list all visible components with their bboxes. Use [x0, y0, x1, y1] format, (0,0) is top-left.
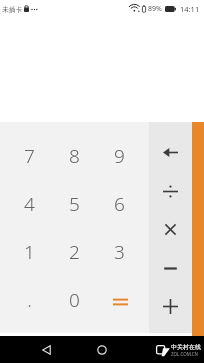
button[interactable]: 0 — [52, 276, 97, 324]
button[interactable]: 1 — [6, 228, 52, 276]
staticText: 中关村在线 — [171, 343, 201, 351]
button[interactable]: Divide — [149, 172, 192, 211]
button[interactable]: Equals — [97, 276, 142, 324]
staticText: 0 — [69, 287, 80, 313]
staticText: ZOL.COM.CN — [171, 351, 198, 357]
button[interactable]: Subtract — [149, 249, 192, 288]
staticText: 6 — [114, 191, 125, 217]
button[interactable]: Home — [90, 338, 114, 362]
staticText: 14:11 — [180, 4, 200, 14]
staticText: 2 — [69, 239, 80, 265]
button[interactable]: 9 — [97, 132, 142, 180]
button[interactable]: 3 — [97, 228, 142, 276]
staticText: 3 — [114, 239, 125, 265]
button[interactable]: . — [6, 276, 52, 324]
staticText: . — [27, 287, 32, 313]
button[interactable]: 5 — [52, 180, 97, 228]
button[interactable]: 2 — [52, 228, 97, 276]
button[interactable]: Backspace — [149, 133, 192, 172]
button[interactable]: Multiply — [149, 210, 192, 249]
button[interactable]: Add — [149, 287, 192, 326]
button[interactable]: 4 — [6, 180, 52, 228]
staticText: 8 — [69, 143, 80, 169]
button[interactable]: 7 — [6, 132, 52, 180]
staticText: 7 — [24, 143, 35, 169]
staticText: 9 — [114, 143, 125, 169]
staticText: 89% — [148, 4, 162, 14]
button[interactable]: Back — [34, 338, 58, 362]
staticText: 4 — [24, 191, 35, 217]
staticText: 5 — [69, 191, 80, 217]
button[interactable]: 6 — [97, 180, 142, 228]
staticText: 1 — [24, 239, 35, 265]
button[interactable]: 8 — [52, 132, 97, 180]
staticText: 未插卡 — [2, 5, 23, 14]
